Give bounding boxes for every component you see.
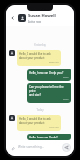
staticText: 09:22 [63, 98, 69, 101]
staticText: about your product [19, 121, 45, 125]
button[interactable]: Can you please tell me the price [9, 83, 71, 103]
staticText: Today [36, 108, 44, 112]
button[interactable]: Hello, I would like to ask [9, 115, 71, 131]
staticText: about your product [19, 56, 45, 60]
staticText: Hello, how can I help? [29, 136, 58, 138]
staticText: and size? [29, 93, 41, 97]
button[interactable]: Attach file [9, 144, 16, 151]
button[interactable] [18, 14, 26, 22]
button[interactable]: Write something... [18, 145, 60, 149]
button[interactable]: Back [9, 14, 17, 22]
staticText: 09:22 [63, 76, 69, 79]
staticText: Hello, how can I help you? [29, 71, 64, 75]
staticText: 09:20 AM [49, 61, 59, 64]
staticText: Write something... [18, 145, 44, 149]
button[interactable]: Hello, how can I help? [9, 134, 71, 140]
staticText: Yesterday [34, 43, 46, 47]
staticText: Hello, I would like to ask [19, 117, 51, 121]
button[interactable]: Hello, I would like to ask [9, 50, 71, 66]
staticText: Can you please tell me the price [29, 85, 69, 93]
button[interactable]: Hello, how can I help you? [9, 69, 71, 81]
staticText: Hello, I would like to ask [19, 52, 51, 56]
button[interactable]: Send [62, 143, 71, 152]
staticText: Active now [28, 20, 42, 24]
staticText: 10:15 AM [49, 126, 59, 129]
staticText: Susan Howell [28, 13, 56, 19]
